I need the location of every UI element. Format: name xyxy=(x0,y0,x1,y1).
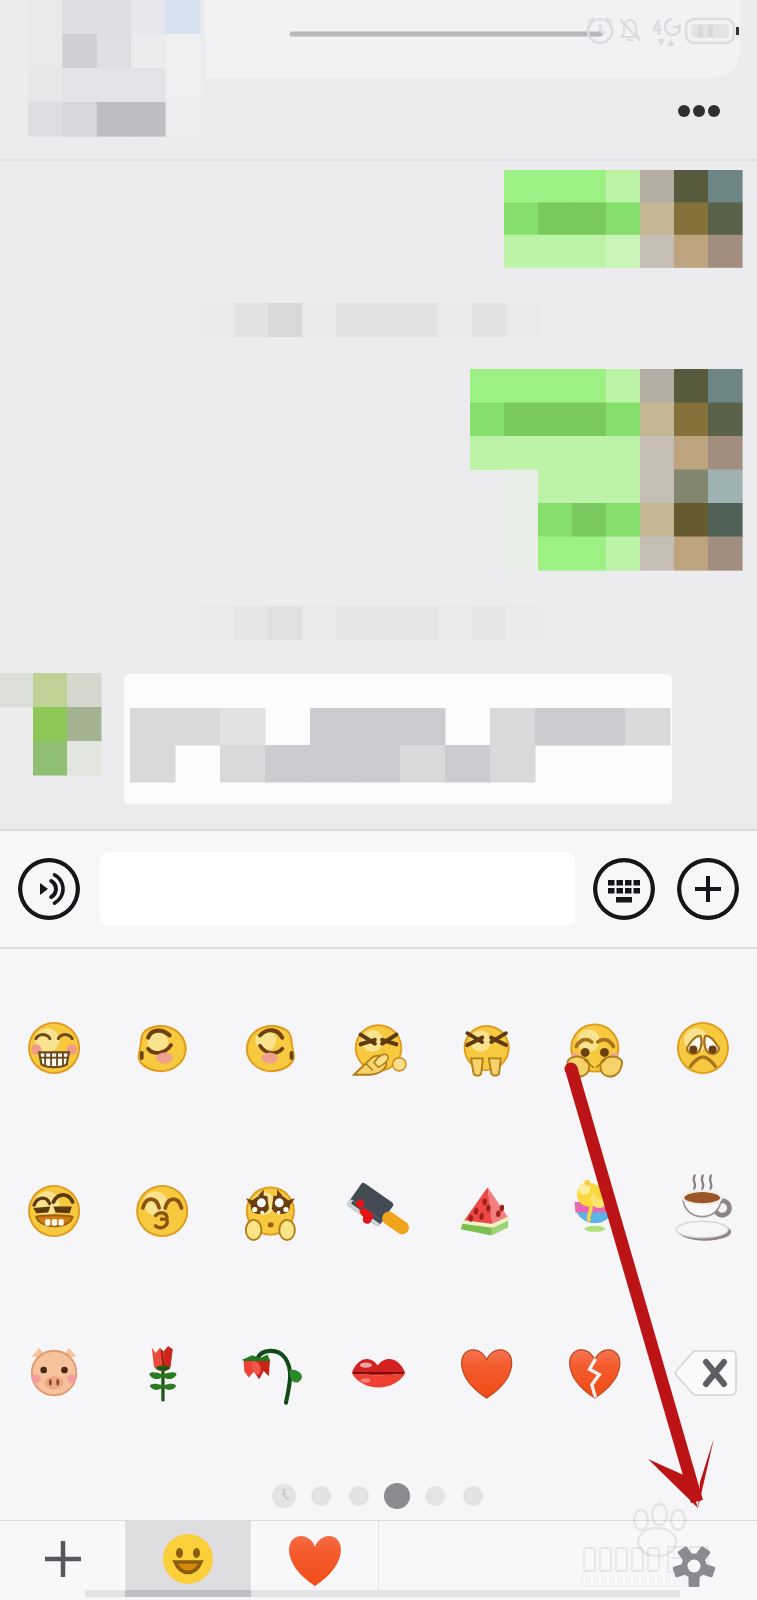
button[interactable]: More xyxy=(677,858,739,920)
button[interactable]: Keyboard xyxy=(593,858,655,920)
button[interactable]: Add sticker pack xyxy=(0,1521,125,1597)
button[interactable]: Voice input xyxy=(18,858,80,920)
button[interactable]: Emoji xyxy=(126,1521,250,1597)
button[interactable]: Favourite stickers xyxy=(251,1521,378,1597)
